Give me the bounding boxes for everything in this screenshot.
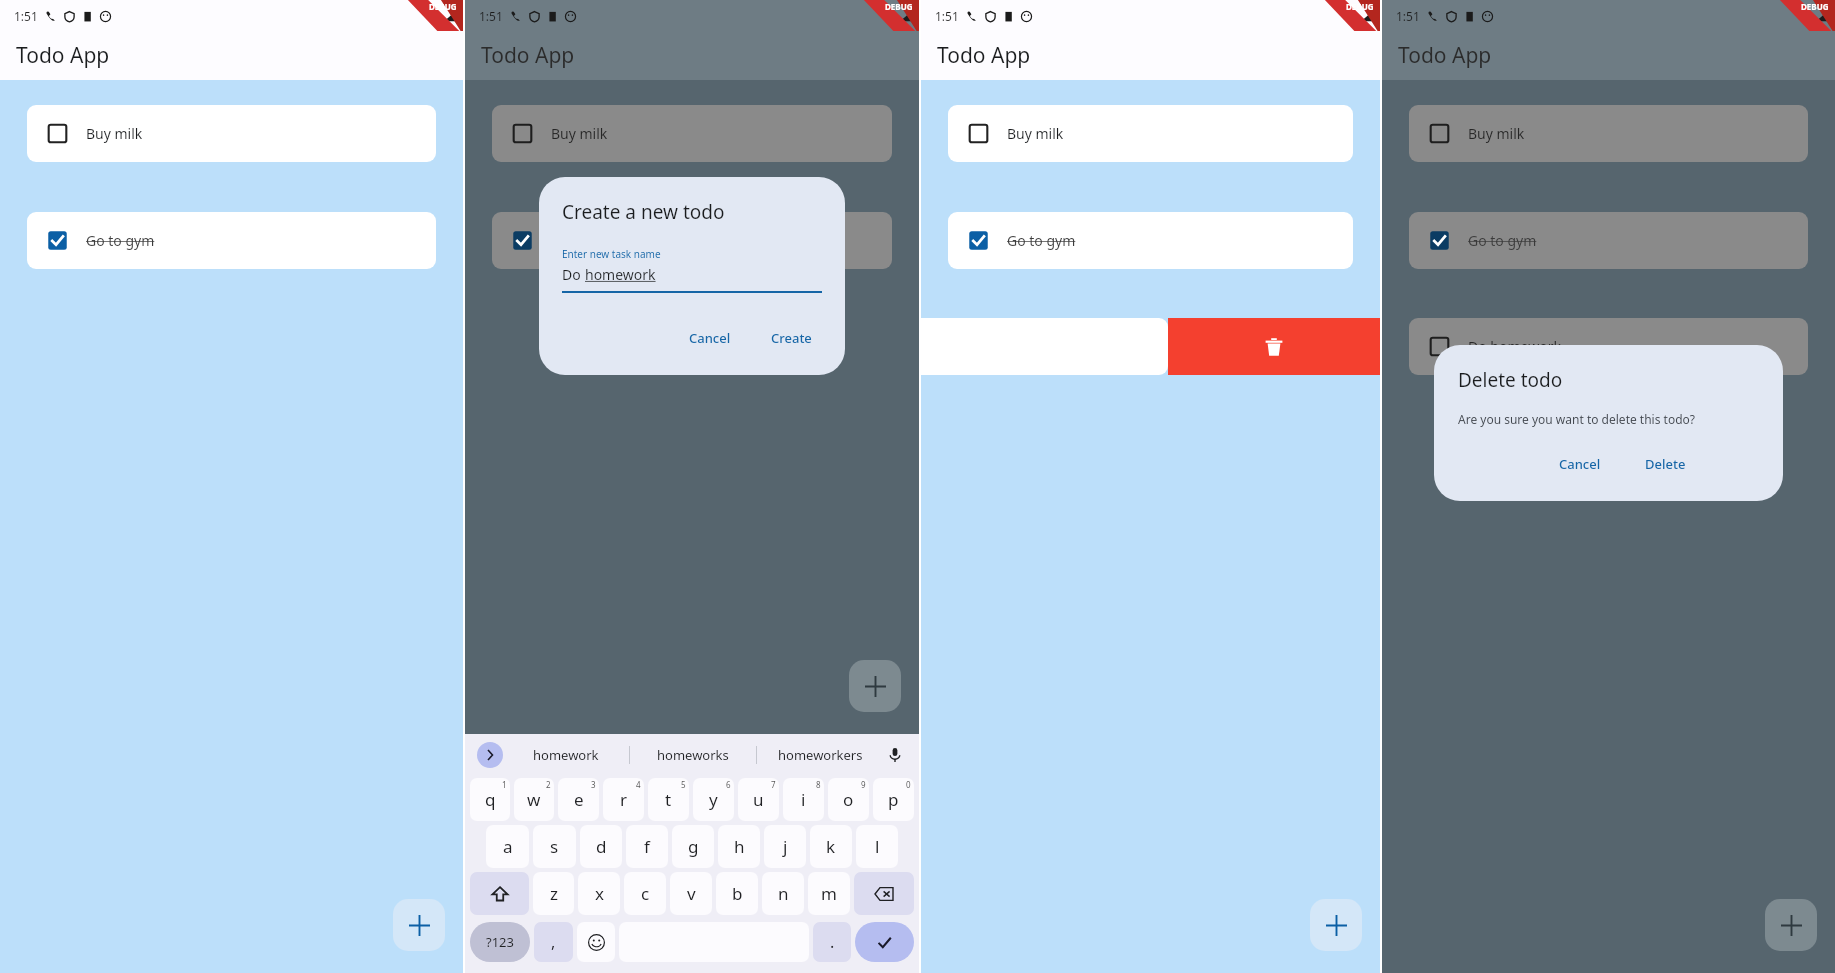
button[interactable]: Go to gym: [948, 212, 1353, 269]
staticText: p: [888, 788, 899, 811]
button[interactable]: Cancel: [679, 323, 741, 353]
staticText: m: [821, 882, 837, 905]
staticText: homeworkers: [778, 746, 863, 764]
button[interactable]: u: [738, 778, 779, 821]
button[interactable]: z: [533, 872, 574, 915]
button[interactable]: o: [828, 778, 869, 821]
staticText: k: [826, 835, 836, 858]
button[interactable]: [1429, 336, 1450, 357]
staticText: j: [783, 835, 788, 858]
button[interactable]: Buy milk: [1409, 105, 1808, 162]
staticText: t: [665, 788, 672, 811]
staticText: Are you sure you want to delete this tod…: [1458, 411, 1696, 427]
button[interactable]: [1429, 230, 1450, 251]
staticText: 2: [546, 779, 551, 790]
button[interactable]: Cancel: [1549, 449, 1611, 479]
staticText: x: [595, 882, 604, 905]
button[interactable]: homeworkers: [757, 734, 883, 776]
button[interactable]: j: [764, 825, 806, 868]
staticText: Buy milk: [1468, 124, 1525, 143]
button[interactable]: y: [693, 778, 734, 821]
button[interactable]: c: [624, 872, 666, 915]
button[interactable]: Create: [761, 323, 822, 353]
button[interactable]: d: [580, 825, 622, 868]
button[interactable]: k: [810, 825, 852, 868]
staticText: Buy milk: [1007, 124, 1064, 143]
button[interactable]: p: [873, 778, 914, 821]
button[interactable]: q: [470, 778, 510, 821]
staticText: 5: [681, 779, 686, 790]
button[interactable]: Key: [854, 872, 914, 915]
button[interactable]: [921, 318, 1168, 375]
button[interactable]: Buy milk: [27, 105, 436, 162]
button[interactable]: l: [856, 825, 898, 868]
button[interactable]: [512, 123, 533, 144]
button[interactable]: Voice input: [883, 743, 907, 767]
button[interactable]: n: [762, 872, 804, 915]
button[interactable]: ,: [534, 922, 573, 962]
staticText: DEBUG: [1801, 1, 1829, 12]
button[interactable]: f: [626, 825, 668, 868]
button[interactable]: More suggestions: [477, 742, 503, 768]
button[interactable]: [47, 123, 68, 144]
button[interactable]: Key: [470, 872, 529, 915]
button[interactable]: s: [533, 825, 576, 868]
staticText: 3: [591, 779, 596, 790]
button[interactable]: Emoji: [577, 922, 615, 962]
staticText: Buy milk: [86, 124, 143, 143]
button[interactable]: Go to gym: [492, 212, 892, 269]
staticText: 8: [816, 779, 821, 790]
button[interactable]: a: [486, 825, 529, 868]
staticText: Buy milk: [551, 124, 608, 143]
staticText: 1:51: [479, 8, 503, 24]
button[interactable]: ?123: [470, 922, 530, 962]
button[interactable]: r: [603, 778, 644, 821]
button[interactable]: homeworks: [630, 734, 756, 776]
button[interactable]: Add todo: [1310, 899, 1362, 951]
button[interactable]: Do homework: [1409, 318, 1808, 375]
button[interactable]: [1429, 123, 1450, 144]
button[interactable]: Delete: [1635, 449, 1696, 479]
button[interactable]: [47, 230, 68, 251]
button[interactable]: [512, 230, 533, 251]
button[interactable]: g: [672, 825, 714, 868]
button[interactable]: Add todo: [849, 660, 901, 712]
staticText: 4: [636, 779, 641, 790]
button[interactable]: w: [514, 778, 554, 821]
staticText: homework: [585, 265, 656, 284]
button[interactable]: homework: [503, 734, 629, 776]
staticText: d: [596, 835, 607, 858]
staticText: r: [620, 788, 628, 811]
staticText: DEBUG: [885, 1, 913, 12]
button[interactable]: h: [718, 825, 760, 868]
button[interactable]: .: [813, 922, 851, 962]
staticText: .: [830, 931, 835, 953]
button[interactable]: b: [716, 872, 758, 915]
button[interactable]: Add todo: [393, 899, 445, 951]
staticText: Todo App: [481, 41, 575, 70]
button[interactable]: x: [578, 872, 620, 915]
staticText: ?123: [486, 933, 514, 951]
button[interactable]: Buy milk: [492, 105, 892, 162]
button[interactable]: Enter: [855, 922, 914, 962]
button[interactable]: v: [670, 872, 712, 915]
button[interactable]: Add todo: [1765, 899, 1817, 951]
staticText: Create: [771, 329, 812, 347]
staticText: Cancel: [1559, 455, 1601, 473]
button[interactable]: i: [783, 778, 824, 821]
staticText: homeworks: [657, 746, 729, 764]
staticText: a: [503, 835, 513, 858]
button[interactable]: [968, 123, 989, 144]
staticText: 1:51: [1396, 8, 1420, 24]
button[interactable]: Delete: [1168, 318, 1380, 375]
staticText: 9: [861, 779, 866, 790]
staticText: u: [753, 788, 764, 811]
button[interactable]: [968, 230, 989, 251]
button[interactable]: Go to gym: [27, 212, 436, 269]
button[interactable]: e: [558, 778, 599, 821]
button[interactable]: m: [808, 872, 850, 915]
button[interactable]: Buy milk: [948, 105, 1353, 162]
button[interactable]: t: [648, 778, 689, 821]
button[interactable]: Go to gym: [1409, 212, 1808, 269]
